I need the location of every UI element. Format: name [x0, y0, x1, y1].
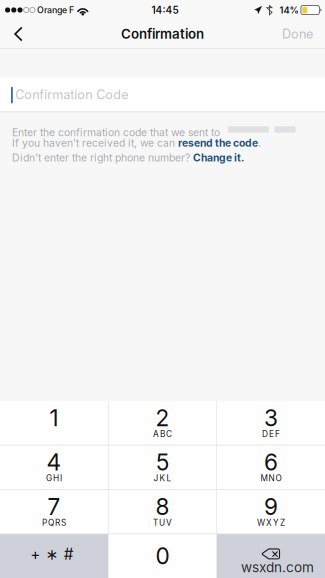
button[interactable]: Change it. [193, 151, 244, 164]
staticText: Enter the confirmation code that we sent… [12, 126, 220, 139]
staticText: 14:45 [151, 4, 178, 16]
button[interactable]: 4 [0, 445, 108, 489]
button[interactable]: 1 [0, 401, 108, 445]
staticText: 4 [46, 449, 61, 476]
staticText: 3 [264, 404, 278, 432]
staticText: . [258, 137, 261, 149]
staticText: PQRS [42, 518, 66, 528]
button[interactable]: Symbols [0, 534, 108, 578]
button[interactable]: 7 [0, 490, 108, 534]
button[interactable]: 9 [217, 490, 325, 534]
button[interactable]: Done [270, 20, 325, 48]
button[interactable]: 8 [108, 490, 216, 534]
button[interactable]: 0 [108, 534, 216, 578]
button[interactable]: resend the code [178, 137, 258, 149]
staticText: 5 [156, 449, 169, 476]
button[interactable]: 2 [108, 401, 216, 445]
staticText: Confirmation Code [15, 87, 128, 102]
staticText: Orange F [37, 5, 74, 15]
staticText: Confirmation [121, 26, 204, 42]
staticText: 0 [155, 542, 169, 570]
staticText: DEF [262, 429, 280, 439]
button[interactable]: Delete [217, 534, 325, 578]
staticText: Done [282, 26, 313, 42]
button[interactable]: 6 [217, 445, 325, 489]
staticText: 1 [49, 404, 58, 432]
staticText: 2 [155, 404, 169, 432]
button[interactable]: 5 [108, 445, 216, 489]
staticText: 14% [279, 4, 298, 16]
staticText: 9 [264, 493, 278, 520]
staticText: Change it. [193, 151, 244, 164]
staticText: WXYZ [257, 518, 285, 528]
staticText: JKL [153, 473, 171, 483]
staticText: TUV [153, 518, 172, 528]
staticText: ABC [153, 429, 172, 439]
staticText: If you haven't received it, we can [12, 137, 178, 149]
staticText: MNO [260, 473, 281, 483]
staticText: 7 [47, 493, 60, 520]
staticText: GHI [46, 473, 62, 483]
staticText: + ∗ # [30, 545, 74, 563]
staticText: Didn't enter the right phone number? [12, 151, 193, 164]
staticText: wsxdn.com [241, 559, 314, 575]
button[interactable]: Back [0, 20, 35, 48]
staticText: resend the code [178, 137, 258, 149]
staticText: 6 [264, 449, 278, 476]
staticText: 8 [155, 493, 169, 520]
button[interactable]: 3 [217, 401, 325, 445]
